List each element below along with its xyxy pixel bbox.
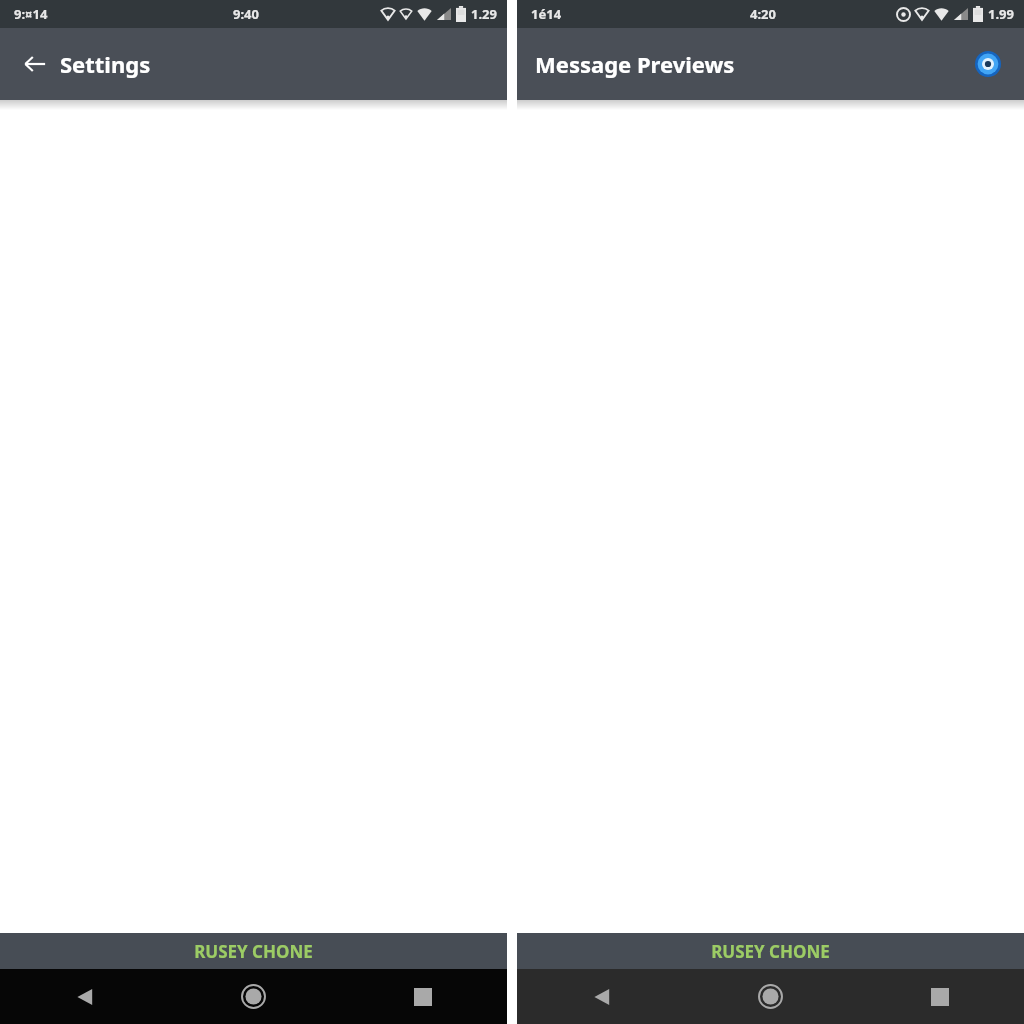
staticText: Message Previews <box>535 49 735 79</box>
button[interactable]: Back <box>517 969 686 1024</box>
staticText: 1é14 <box>531 5 562 23</box>
button[interactable]: RUSEY CHONE <box>517 933 1024 969</box>
button[interactable]: RUSEY CHONE <box>0 933 507 969</box>
staticText: RUSEY CHONE <box>194 940 313 963</box>
button[interactable]: Account <box>968 44 1008 84</box>
button[interactable]: Recents <box>855 969 1024 1024</box>
staticText: 1.99 <box>988 5 1014 23</box>
button[interactable]: Home <box>169 969 338 1024</box>
staticText: 1.29 <box>471 5 497 23</box>
button[interactable]: Home <box>686 969 855 1024</box>
staticText: 9:40 <box>233 5 259 23</box>
staticText: Settings <box>60 49 151 79</box>
button[interactable]: Back <box>0 969 169 1024</box>
staticText: RUSEY CHONE <box>711 940 830 963</box>
button[interactable]: Back <box>18 47 52 81</box>
button[interactable]: Recents <box>338 969 507 1024</box>
staticText: 9:¤14 <box>14 5 48 23</box>
staticText: 4:20 <box>750 5 776 23</box>
